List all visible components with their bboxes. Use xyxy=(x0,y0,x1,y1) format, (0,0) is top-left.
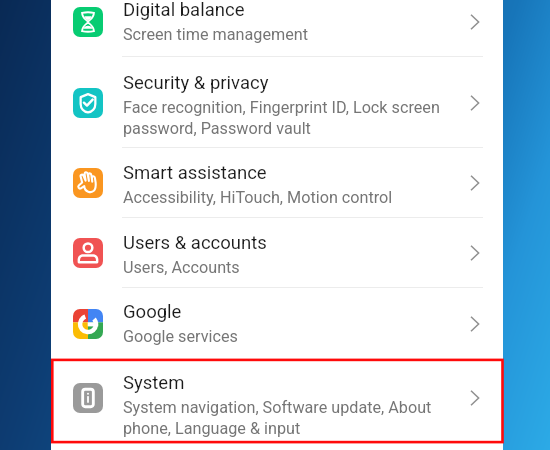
button[interactable]: Smart assistance xyxy=(51,148,503,218)
button[interactable]: Security & privacy xyxy=(51,57,503,148)
other: Users & accounts xyxy=(467,243,483,263)
button[interactable]: System xyxy=(51,360,503,436)
staticText: System xyxy=(123,372,185,394)
staticText: Google xyxy=(123,301,182,323)
other: Security & privacy xyxy=(467,93,483,113)
button[interactable]: Google xyxy=(51,288,503,360)
staticText: Users & accounts xyxy=(123,232,267,254)
button[interactable]: Digital balance xyxy=(51,0,503,57)
staticText: Google services xyxy=(123,327,463,346)
staticText: Face recognition, Fingerprint ID, Lock s… xyxy=(123,98,463,138)
staticText: Security & privacy xyxy=(123,72,269,94)
staticText: Accessibility, HiTouch, Motion control xyxy=(123,188,463,207)
staticText: Smart assistance xyxy=(123,162,267,184)
button[interactable]: Users & accounts xyxy=(51,218,503,288)
staticText: System navigation, Software update, Abou… xyxy=(123,398,463,438)
other: Smart assistance xyxy=(467,173,483,193)
other: Digital balance xyxy=(467,12,483,32)
other: Google xyxy=(467,314,483,334)
staticText: Digital balance xyxy=(123,0,245,21)
staticText: Screen time management xyxy=(123,25,463,44)
staticText: Users, Accounts xyxy=(123,258,463,277)
other: System xyxy=(467,388,483,408)
